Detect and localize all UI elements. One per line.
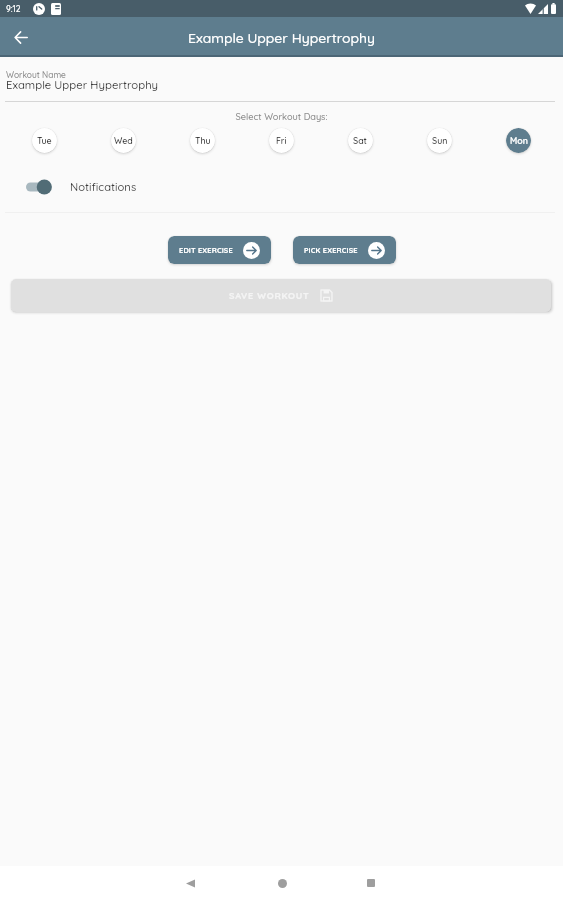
button[interactable]: Recent apps: [353, 866, 389, 900]
button[interactable]: Sat: [348, 128, 373, 153]
button[interactable]: Wed: [111, 128, 136, 153]
button[interactable]: Back: [8, 24, 34, 50]
staticText: PICK EXERCISE: [304, 246, 358, 255]
staticText: Workout Name: [6, 70, 66, 80]
button[interactable]: EDIT EXERCISE: [168, 236, 271, 264]
button[interactable]: PICK EXERCISE: [293, 236, 396, 264]
button[interactable]: Home: [264, 866, 300, 900]
staticText: Wed: [114, 135, 133, 146]
button[interactable]: Notifications toggle: [26, 177, 51, 197]
staticText: Mon: [510, 135, 528, 146]
button[interactable]: Tue: [32, 128, 57, 153]
staticText: SAVE WORKOUT: [229, 290, 310, 301]
staticText: Example Upper Hypertrophy: [188, 29, 375, 46]
button[interactable]: Sun: [427, 128, 452, 153]
staticText: Example Upper Hypertrophy: [6, 78, 159, 92]
staticText: Tue: [37, 135, 52, 146]
button[interactable]: Back: [172, 866, 208, 900]
staticText: Select Workout Days:: [0, 111, 563, 122]
staticText: Thu: [195, 135, 211, 146]
button[interactable]: Thu: [190, 128, 215, 153]
staticText: EDIT EXERCISE: [179, 246, 233, 255]
staticText: Fri: [276, 135, 287, 146]
button[interactable]: Fri: [269, 128, 294, 153]
staticText: Sun: [432, 135, 448, 146]
staticText: Notifications: [70, 180, 137, 194]
staticText: 9:12: [6, 3, 21, 14]
staticText: Sat: [353, 135, 368, 146]
button[interactable]: Mon: [506, 128, 531, 153]
